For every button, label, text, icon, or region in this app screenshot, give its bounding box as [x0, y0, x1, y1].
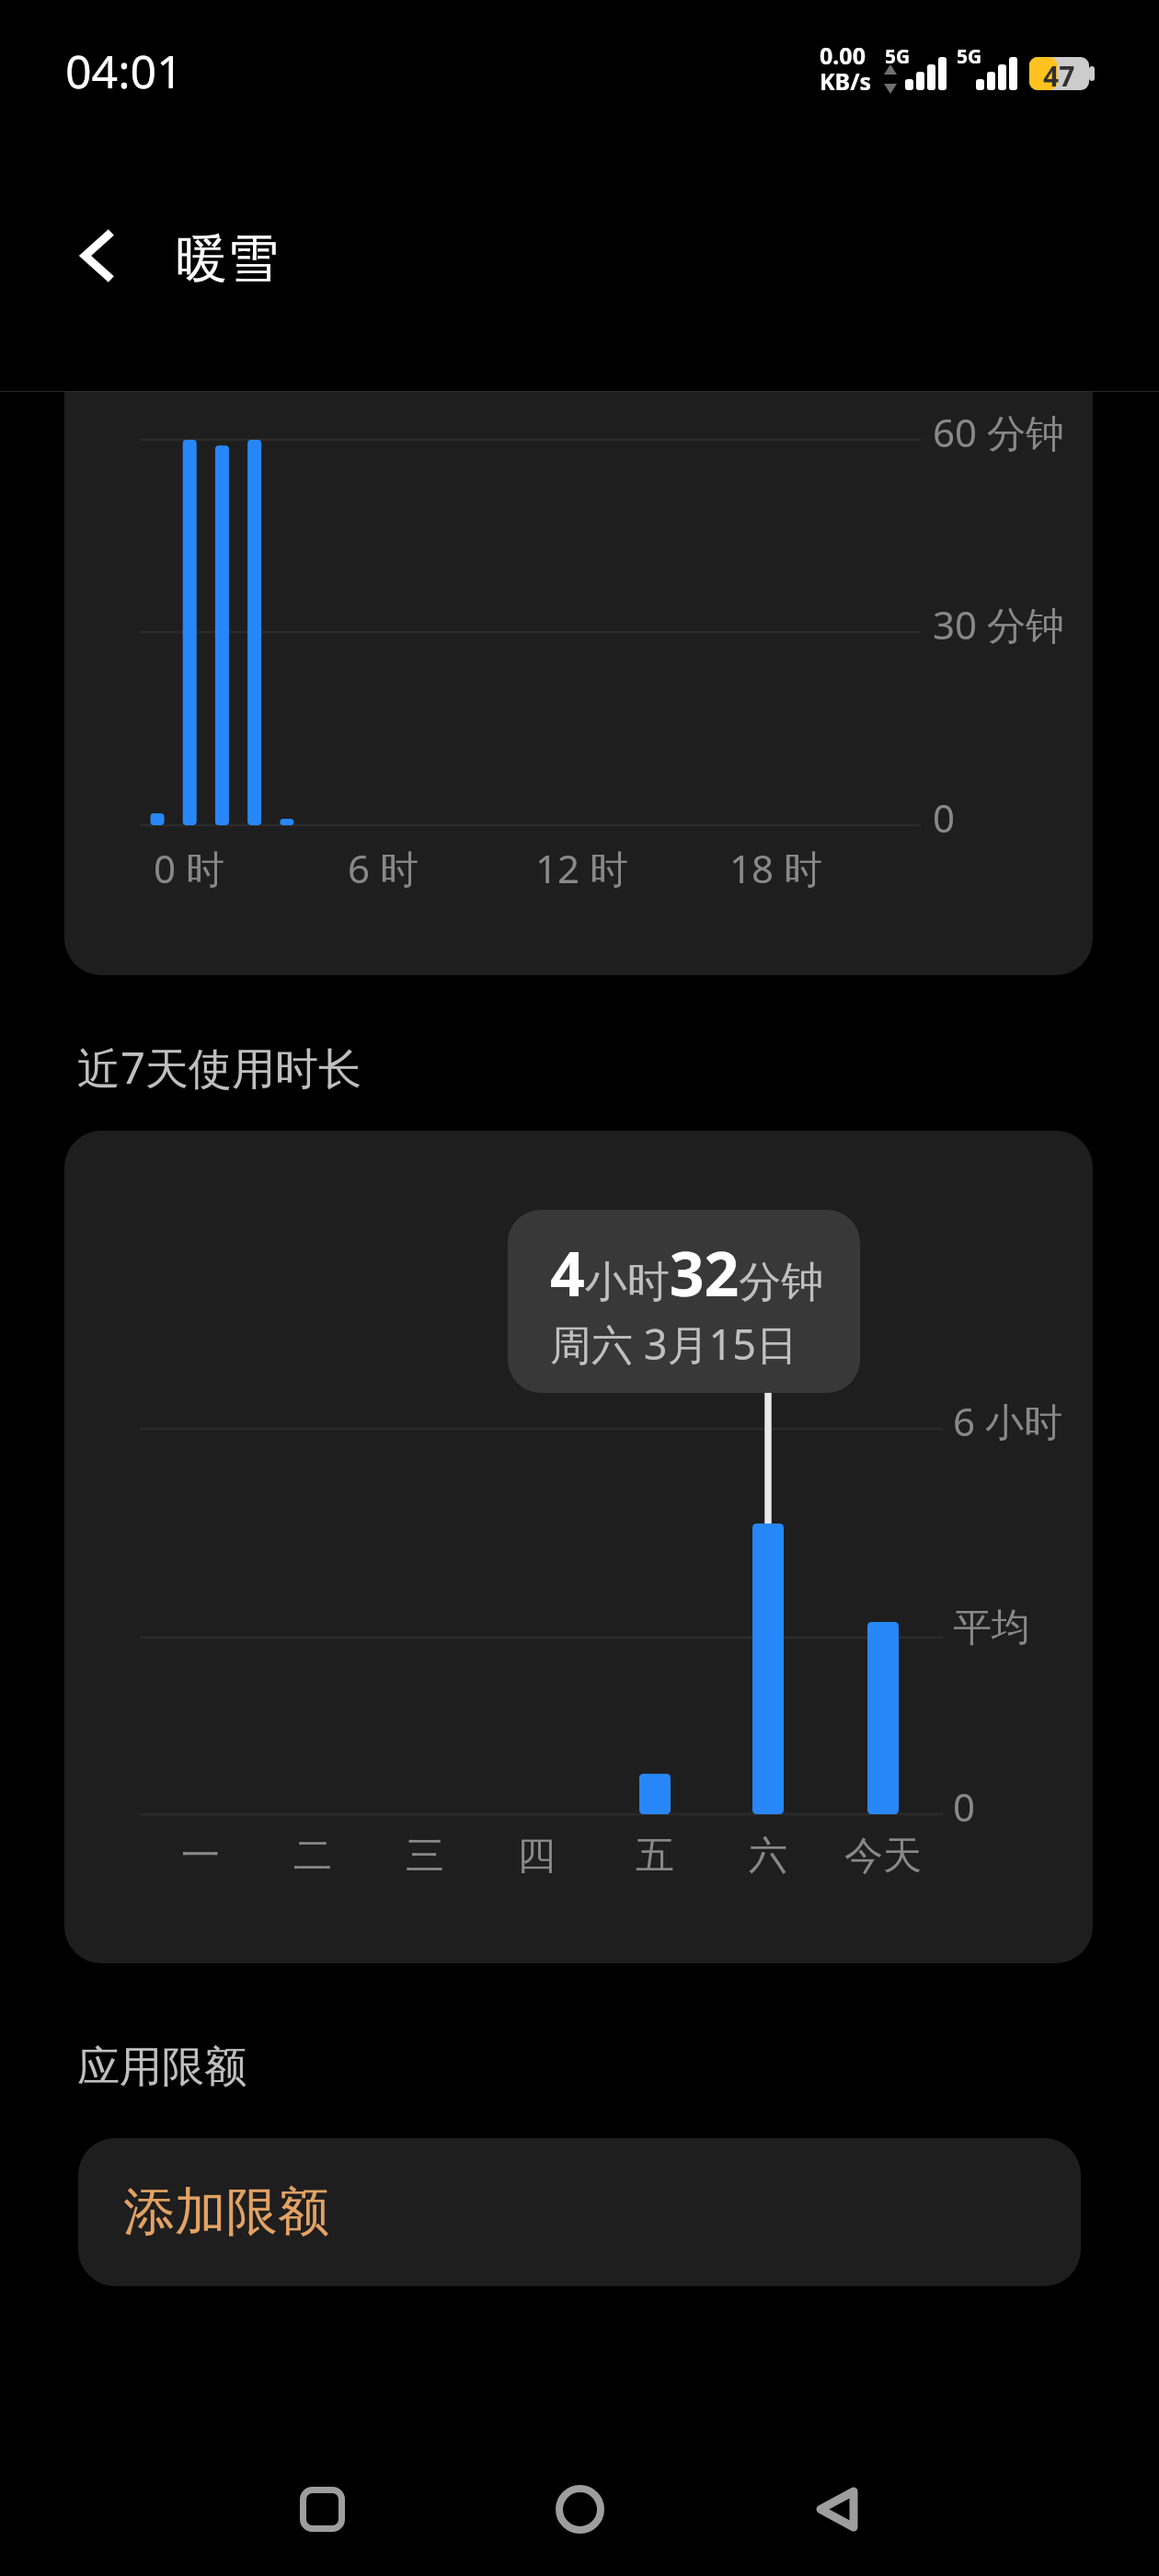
- staticText: 0: [953, 1780, 976, 1833]
- staticText: 04:01: [65, 40, 183, 102]
- staticText: 二: [293, 1832, 332, 1880]
- button[interactable]: 返回: [51, 210, 143, 302]
- button[interactable]: 主页: [534, 2463, 625, 2555]
- staticText: 30 分钟: [933, 598, 1064, 650]
- staticText: 今天: [844, 1832, 922, 1880]
- staticText: 60 分钟: [933, 406, 1064, 458]
- staticText: 5G: [885, 43, 911, 70]
- staticText: 近7天使用时长: [77, 1038, 361, 1097]
- staticText: 一: [181, 1832, 220, 1880]
- staticText: 47: [1043, 57, 1075, 95]
- button[interactable]: 最近任务: [276, 2463, 368, 2555]
- staticText: 四: [517, 1832, 556, 1880]
- staticText: 平均: [953, 1604, 1030, 1652]
- staticText: 0.00: [820, 40, 866, 71]
- button[interactable]: 返回: [791, 2463, 883, 2555]
- staticText: 三: [406, 1832, 444, 1880]
- button[interactable]: 添加限额: [78, 2138, 1081, 2286]
- staticText: 5G: [957, 43, 982, 70]
- staticText: 0 时: [154, 842, 224, 894]
- staticText: 五: [636, 1832, 674, 1880]
- staticText: 六: [749, 1832, 787, 1880]
- staticText: 6 时: [348, 842, 419, 894]
- staticText: 添加限额: [123, 2179, 329, 2245]
- staticText: 12 时: [535, 842, 628, 894]
- staticText: 0: [933, 791, 956, 844]
- staticText: KB/s: [820, 65, 872, 97]
- staticText: 暖雪: [176, 226, 279, 292]
- staticText: 18 时: [729, 842, 822, 894]
- staticText: 应用限额: [77, 2041, 247, 2094]
- staticText: 6 小时: [953, 1395, 1062, 1447]
- staticText: 周六 3月15日: [550, 1316, 798, 1372]
- staticText: 4小时32分钟: [550, 1231, 824, 1314]
